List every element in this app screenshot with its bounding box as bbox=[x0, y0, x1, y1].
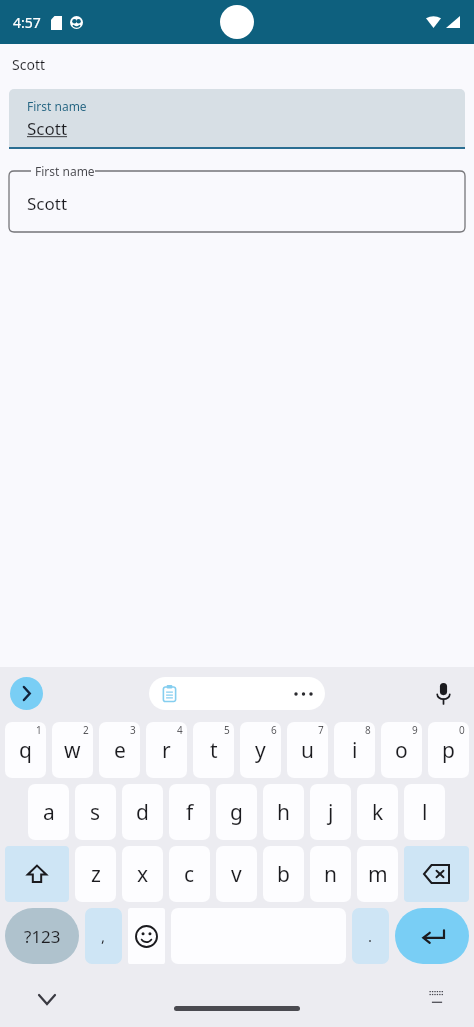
staticText: ?123 bbox=[24, 925, 61, 948]
staticText: p bbox=[442, 736, 455, 765]
button[interactable]: g bbox=[216, 784, 257, 840]
button[interactable]: Enter bbox=[395, 908, 469, 964]
button[interactable]: v bbox=[216, 846, 257, 902]
button[interactable]: r bbox=[146, 722, 187, 778]
staticText: r bbox=[162, 736, 171, 765]
button[interactable]: a bbox=[28, 784, 69, 840]
button[interactable]: u bbox=[287, 722, 328, 778]
button[interactable]: h bbox=[263, 784, 304, 840]
button[interactable]: t bbox=[193, 722, 234, 778]
staticText: g bbox=[230, 798, 243, 827]
button[interactable]: k bbox=[357, 784, 398, 840]
staticText: First name bbox=[35, 163, 95, 179]
button[interactable]: y bbox=[240, 722, 281, 778]
staticText: y bbox=[255, 736, 266, 765]
button[interactable]: Backspace bbox=[404, 846, 469, 902]
button[interactable]: First name bbox=[9, 89, 465, 149]
button[interactable]: j bbox=[310, 784, 351, 840]
button[interactable]: c bbox=[169, 846, 210, 902]
button[interactable]: Switch keyboard bbox=[422, 982, 452, 1012]
staticText: 2 bbox=[83, 723, 89, 737]
staticText: e bbox=[114, 736, 126, 765]
button[interactable]: l bbox=[404, 784, 445, 840]
staticText: 7 bbox=[318, 723, 324, 737]
button[interactable]: First name bbox=[9, 166, 465, 232]
staticText: , bbox=[101, 926, 106, 946]
staticText: First name bbox=[27, 98, 87, 114]
button[interactable]: f bbox=[169, 784, 210, 840]
staticText: t bbox=[210, 736, 218, 765]
button[interactable]: . bbox=[352, 908, 389, 964]
button[interactable]: b bbox=[263, 846, 304, 902]
staticText: q bbox=[19, 736, 32, 765]
button[interactable]: , bbox=[85, 908, 122, 964]
button[interactable]: o bbox=[381, 722, 422, 778]
staticText: n bbox=[324, 860, 337, 889]
staticText: 1 bbox=[36, 723, 42, 737]
staticText: h bbox=[277, 798, 290, 827]
button[interactable]: m bbox=[357, 846, 398, 902]
staticText: z bbox=[91, 860, 101, 889]
staticText: 4:57 bbox=[13, 13, 41, 32]
button[interactable]: d bbox=[122, 784, 163, 840]
staticText: 9 bbox=[412, 723, 418, 737]
button[interactable]: q bbox=[5, 722, 46, 778]
staticText: 4 bbox=[177, 723, 183, 737]
staticText: 5 bbox=[224, 723, 230, 737]
staticText: x bbox=[137, 860, 149, 889]
staticText: 8 bbox=[365, 723, 371, 737]
staticText: d bbox=[136, 798, 149, 827]
staticText: o bbox=[395, 736, 408, 765]
button[interactable] bbox=[149, 677, 325, 710]
staticText: 0 bbox=[459, 723, 465, 737]
staticText: Scott bbox=[27, 117, 68, 140]
staticText: Scott bbox=[12, 55, 45, 74]
button[interactable]: Shift bbox=[5, 846, 69, 902]
staticText: i bbox=[352, 736, 358, 765]
staticText: b bbox=[277, 860, 290, 889]
staticText: j bbox=[328, 798, 334, 827]
staticText: m bbox=[368, 860, 388, 889]
staticText: k bbox=[372, 798, 384, 827]
staticText: v bbox=[231, 860, 242, 889]
button[interactable]: Emoji bbox=[128, 908, 165, 964]
staticText: 3 bbox=[130, 723, 136, 737]
button[interactable]: Voice input bbox=[426, 676, 460, 710]
staticText: 6 bbox=[271, 723, 277, 737]
staticText: f bbox=[186, 798, 194, 827]
button[interactable]: Expand suggestions bbox=[10, 677, 43, 710]
button[interactable]: e bbox=[99, 722, 140, 778]
button[interactable]: i bbox=[334, 722, 375, 778]
button[interactable]: w bbox=[52, 722, 93, 778]
staticText: . bbox=[368, 926, 373, 946]
button[interactable]: p bbox=[428, 722, 469, 778]
button[interactable]: n bbox=[310, 846, 351, 902]
staticText: c bbox=[184, 860, 195, 889]
button[interactable]: Hide keyboard bbox=[32, 984, 62, 1014]
staticText: l bbox=[422, 798, 428, 827]
button[interactable]: z bbox=[75, 846, 116, 902]
button[interactable]: ?123 bbox=[5, 908, 79, 964]
button[interactable]: s bbox=[75, 784, 116, 840]
staticText: u bbox=[301, 736, 314, 765]
staticText: a bbox=[43, 798, 55, 827]
staticText: w bbox=[64, 736, 81, 765]
staticText: s bbox=[90, 798, 101, 827]
staticText: Scott bbox=[27, 192, 68, 215]
button[interactable]: x bbox=[122, 846, 163, 902]
